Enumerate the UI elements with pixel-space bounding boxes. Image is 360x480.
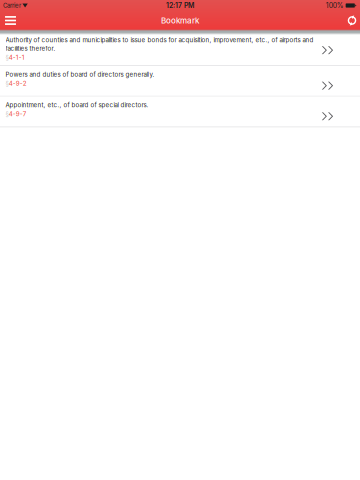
staticText: 4-9-2 [9,80,27,87]
staticText: 4-9-7 [9,110,27,118]
staticText: 4-1-1 [9,54,25,61]
staticText: § [5,54,8,61]
button[interactable]: Appointment, etc., of board of special d… [0,97,360,127]
staticText: Carrier [3,2,21,9]
staticText: § [5,110,8,118]
staticText: 12:17 PM [166,1,194,10]
button[interactable]: Refresh [344,11,360,30]
button[interactable]: Authority of counties and municipalities… [0,30,360,66]
staticText: § [5,80,8,87]
button[interactable]: Powers and duties of board of directors … [0,66,360,97]
staticText: 100% [326,1,344,10]
staticText: Powers and duties of board of directors … [5,71,154,78]
staticText: Bookmark [161,16,199,25]
button[interactable]: Menu [0,11,21,30]
staticText: Authority of counties and municipalities… [5,36,313,52]
staticText: Appointment, etc., of board of special d… [5,101,148,109]
